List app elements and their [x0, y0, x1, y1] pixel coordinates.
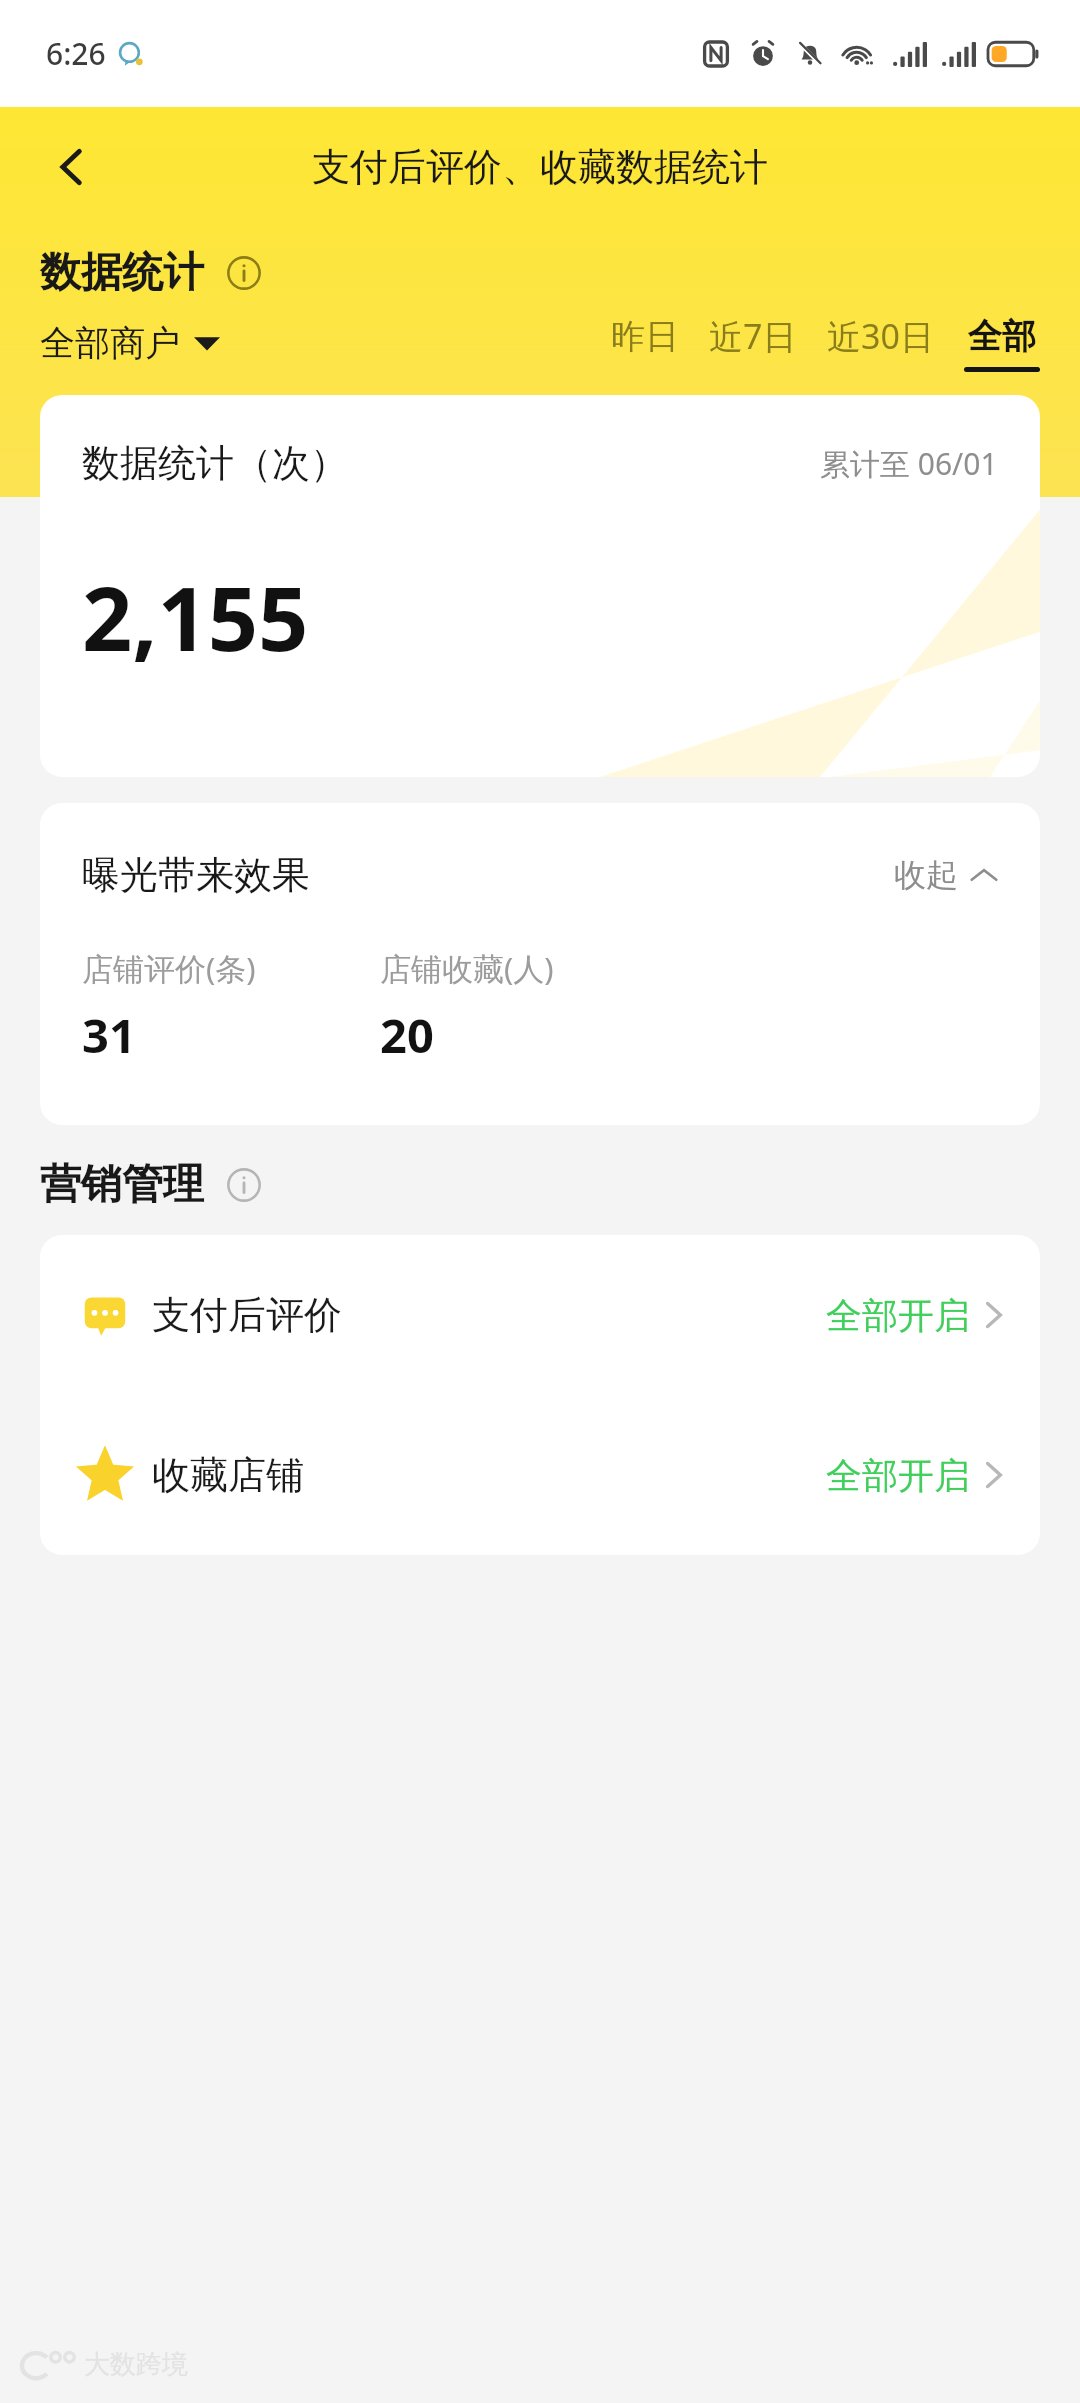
staticText: 店铺评价(条) — [82, 947, 256, 989]
button[interactable]: 支付后评价 — [40, 1235, 1040, 1395]
staticText: 近7日 — [709, 313, 797, 359]
staticText: 店铺收藏(人) — [380, 947, 554, 989]
button[interactable]: 全部 — [964, 315, 1040, 372]
staticText: 31 — [82, 1003, 136, 1067]
staticText: 6:26 — [46, 33, 106, 74]
staticText: 支付后评价 — [152, 1291, 342, 1339]
staticText: 营销管理 — [40, 1159, 204, 1211]
staticText: 2,155 — [82, 557, 309, 677]
staticText: 20 — [380, 1003, 434, 1067]
button[interactable]: 收起 — [894, 855, 998, 895]
staticText: 近30日 — [827, 313, 934, 359]
button[interactable]: Info — [222, 251, 266, 295]
button[interactable]: 近30日 — [827, 313, 934, 373]
staticText: 数据统计 — [40, 247, 204, 299]
staticText: 全部开启 — [826, 1293, 970, 1338]
button[interactable]: 全部商户 — [40, 321, 220, 365]
staticText: 数据统计（次） — [82, 439, 348, 487]
button[interactable]: 数据统计（次） — [40, 395, 1040, 777]
staticText: 全部 — [968, 315, 1036, 358]
staticText: 收藏店铺 — [152, 1451, 304, 1499]
button[interactable]: 近7日 — [709, 313, 797, 373]
staticText: 曝光带来效果 — [82, 851, 310, 899]
staticText: 收起 — [894, 855, 958, 895]
button[interactable]: Info — [222, 1163, 266, 1207]
button[interactable]: Back — [24, 119, 120, 215]
staticText: 全部商户 — [40, 321, 180, 365]
staticText: 昨日 — [611, 315, 679, 358]
button[interactable]: 收藏店铺 — [40, 1395, 1040, 1555]
button[interactable]: 昨日 — [611, 315, 679, 372]
staticText: 全部开启 — [826, 1453, 970, 1498]
staticText: 累计至 06/01 — [820, 443, 998, 484]
staticText: 大数跨境 — [84, 2348, 188, 2381]
staticText: 支付后评价、收藏数据统计 — [312, 143, 768, 191]
